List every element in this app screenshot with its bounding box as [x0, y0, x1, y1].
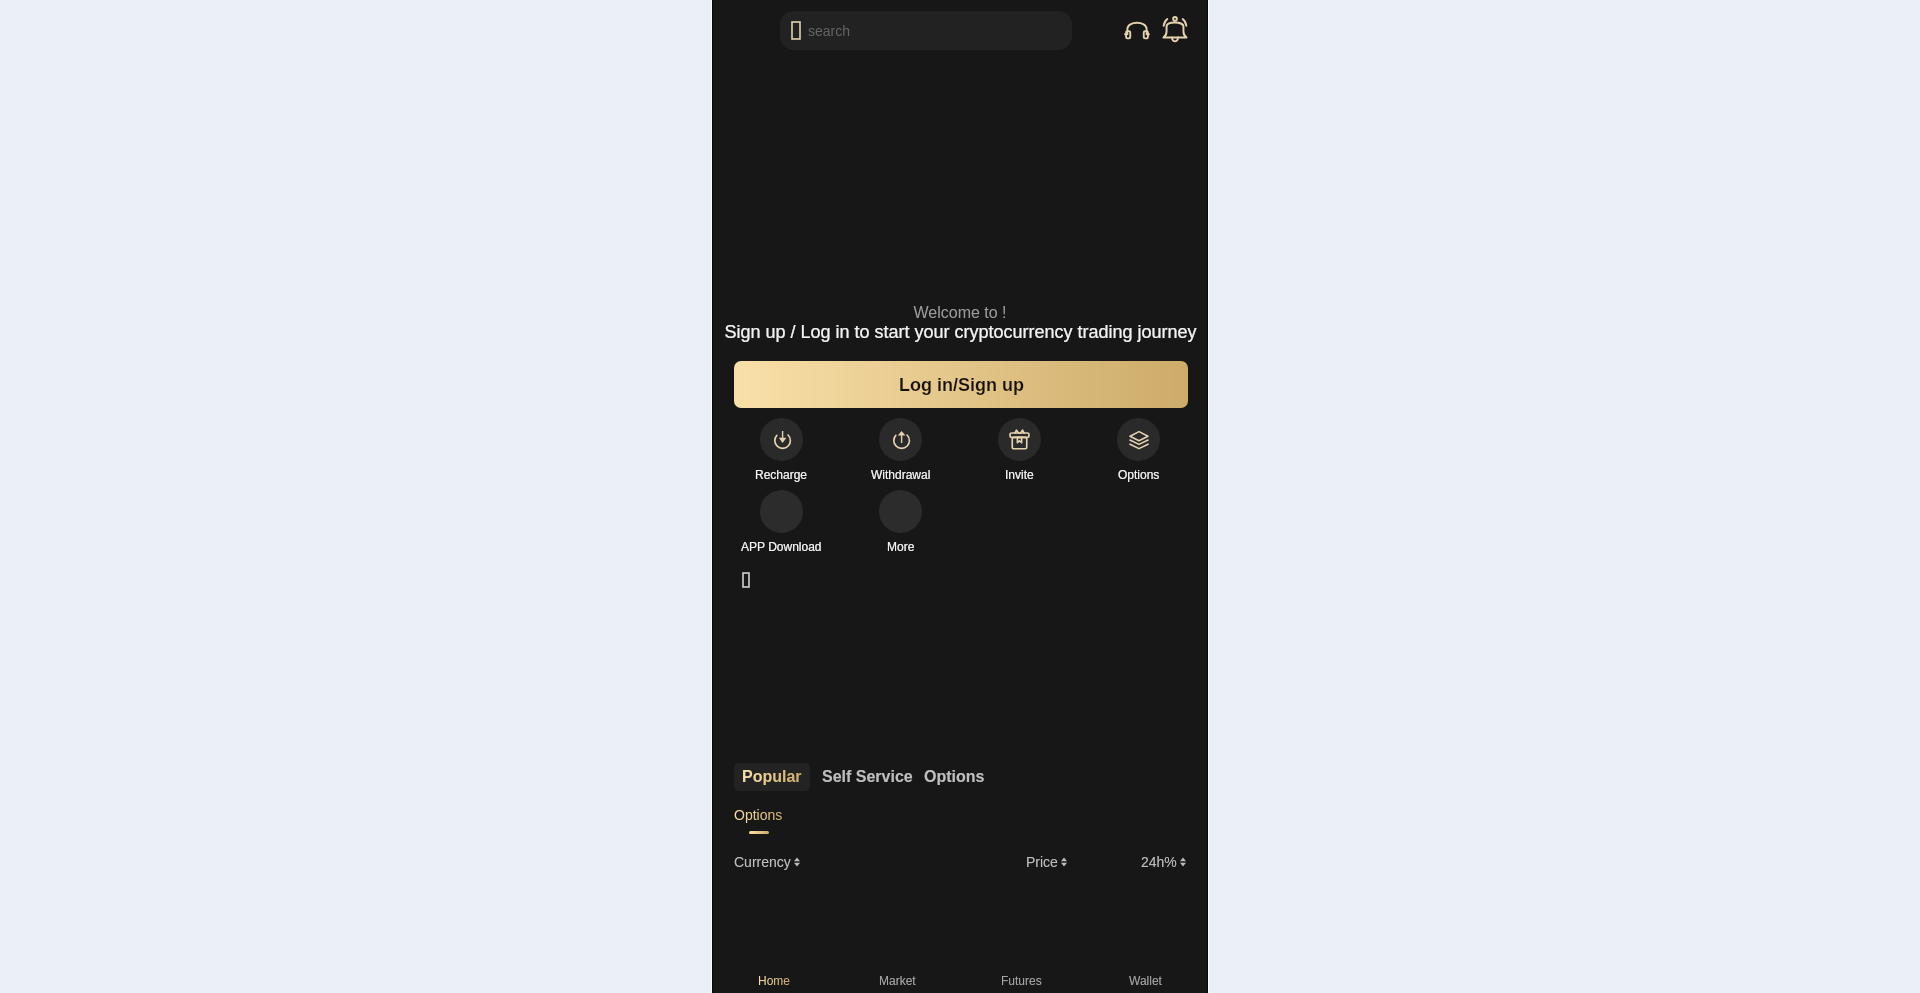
staticText: Invite	[1005, 468, 1034, 481]
staticText: Market	[879, 974, 916, 987]
button[interactable]: Invite	[960, 418, 1079, 481]
staticText: Options	[734, 807, 783, 823]
staticText: Sign up / Log in to start your cryptocur…	[724, 322, 1197, 342]
staticText: Log in/Sign up	[899, 375, 1024, 395]
button[interactable]: Options	[1079, 418, 1198, 481]
staticText: Futures	[1001, 974, 1042, 987]
staticText: More	[887, 540, 915, 553]
button[interactable]: Market	[836, 960, 959, 993]
staticText: 24h%	[1141, 854, 1177, 870]
staticText: Home	[758, 974, 791, 987]
button[interactable]: Withdrawal	[841, 418, 960, 481]
staticText: Recharge	[755, 468, 808, 481]
staticText: Options	[1118, 468, 1160, 481]
staticText: Popular	[742, 768, 802, 786]
button[interactable]: Wallet	[1083, 960, 1207, 993]
staticText: APP Download	[741, 540, 822, 553]
button[interactable]: Options	[924, 763, 985, 791]
staticText: Options	[924, 768, 985, 786]
button[interactable]: Home	[713, 960, 836, 993]
button[interactable]: Customer support	[1124, 16, 1150, 42]
staticText: search	[808, 23, 851, 39]
staticText: Price	[1026, 854, 1058, 870]
staticText: Withdrawal	[871, 468, 931, 481]
button[interactable]: APP Download	[722, 490, 841, 553]
button[interactable]: More	[841, 490, 960, 553]
button[interactable]: search	[780, 11, 1072, 50]
button[interactable]: 24h%	[1141, 854, 1186, 870]
button[interactable]: Self Service	[822, 763, 913, 791]
button[interactable]: Notifications	[1162, 16, 1188, 42]
button[interactable]: Recharge	[722, 418, 841, 481]
button[interactable]: Price	[1026, 854, 1067, 870]
button[interactable]: Futures	[959, 960, 1083, 993]
staticText: Self Service	[822, 768, 913, 786]
staticText: Wallet	[1129, 974, 1162, 987]
button[interactable]: Log in/Sign up	[734, 361, 1188, 408]
button[interactable]: Popular	[734, 763, 810, 791]
staticText: Welcome to !	[913, 304, 1007, 322]
button[interactable]: Currency	[734, 854, 800, 870]
staticText: Currency	[734, 854, 791, 870]
button[interactable]: Options	[734, 807, 783, 834]
